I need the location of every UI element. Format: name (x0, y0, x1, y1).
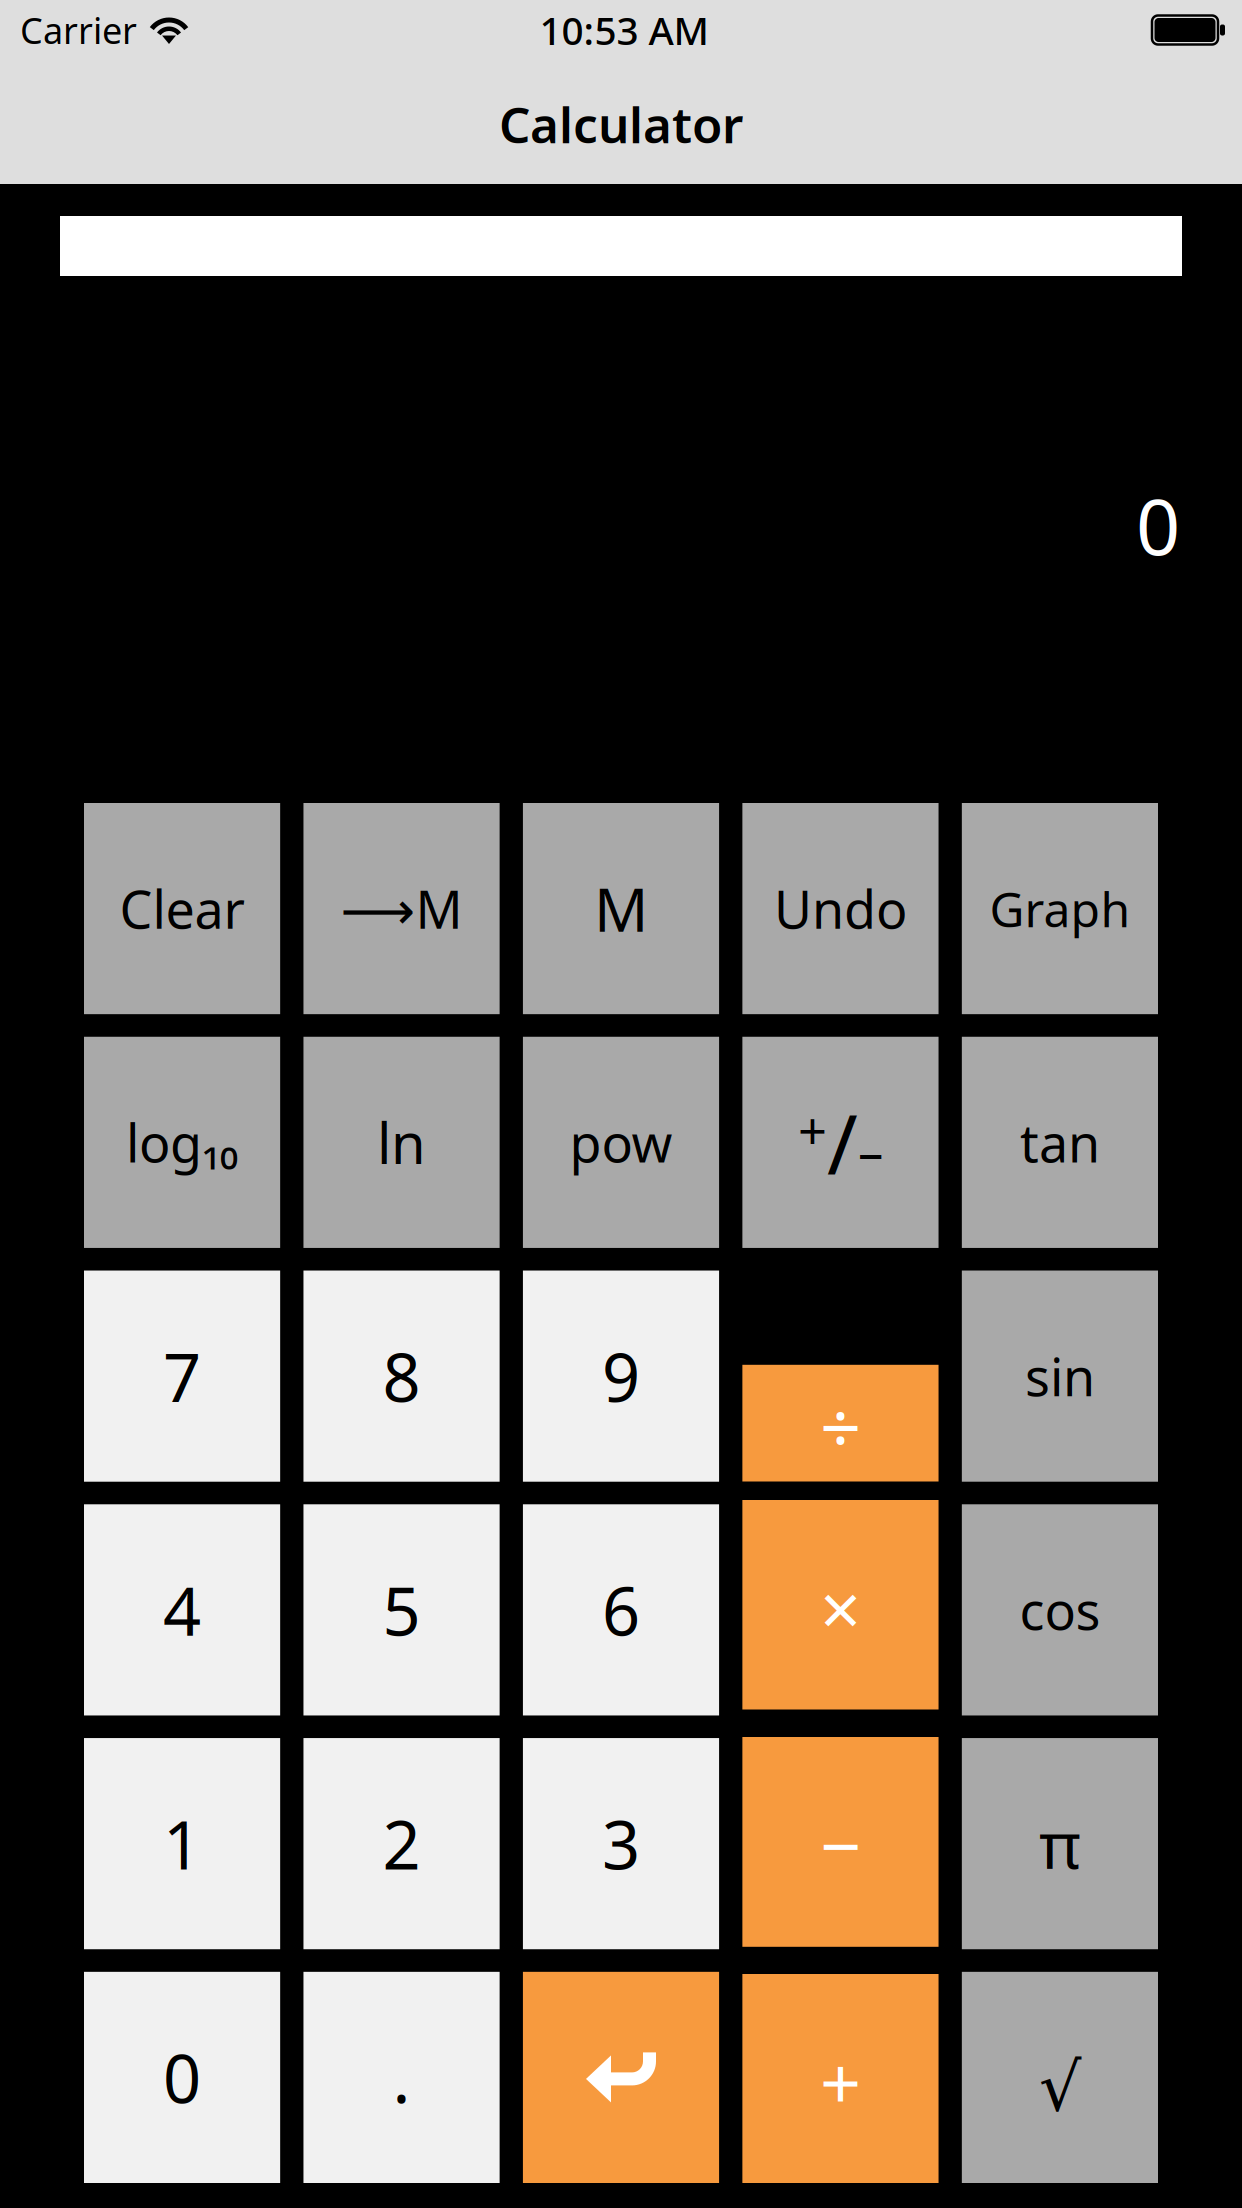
button[interactable]: sin (962, 1270, 1158, 1482)
staticText: 9 (602, 1332, 640, 1420)
staticText: / (827, 1087, 858, 1197)
staticText: tan (1020, 1108, 1100, 1177)
button[interactable]: Multiply (742, 1500, 939, 1709)
button[interactable]: Return (523, 1972, 719, 2183)
staticText: + (798, 1097, 827, 1164)
staticText: Carrier (20, 6, 137, 54)
staticText: Undo (774, 874, 907, 943)
button[interactable]: 1 (84, 1738, 280, 1949)
staticText: 1 (163, 1799, 201, 1888)
staticText: × (820, 1560, 861, 1655)
staticText: ln (377, 1105, 426, 1180)
button[interactable]: . (303, 1972, 500, 2183)
button[interactable]: tan (962, 1037, 1158, 1248)
button[interactable]: 6 (523, 1504, 719, 1715)
staticText: 10:53 AM (539, 4, 708, 56)
button[interactable]: cos (962, 1504, 1158, 1715)
staticText: 5 (382, 1566, 420, 1654)
button[interactable]: 2 (303, 1738, 500, 1949)
staticText: ⟶M (340, 874, 462, 943)
button[interactable]: Square root (962, 1972, 1158, 2183)
staticText: 0 (163, 2033, 201, 2122)
staticText: . (392, 2033, 410, 2122)
button[interactable]: Subtract (742, 1737, 939, 1947)
button[interactable]: 5 (303, 1504, 500, 1715)
staticText: Calculator (499, 91, 743, 157)
staticText: − (820, 1797, 861, 1893)
button[interactable]: 7 (84, 1270, 280, 1482)
button[interactable]: Plus or minus (742, 1037, 939, 1248)
staticText: pow (569, 1108, 672, 1177)
button[interactable]: pow (523, 1037, 719, 1248)
staticText: + (820, 2034, 861, 2129)
button[interactable]: M (523, 803, 719, 1014)
staticText: ÷ (820, 1378, 861, 1474)
staticText: 6 (602, 1566, 640, 1654)
staticText: 0 (1136, 474, 1180, 576)
button[interactable]: Graph (962, 803, 1158, 1014)
button[interactable]: 9 (523, 1270, 719, 1482)
button[interactable]: 0 (84, 1972, 280, 2183)
staticText: – (858, 1118, 883, 1185)
button[interactable]: 4 (84, 1504, 280, 1715)
staticText: 8 (382, 1332, 420, 1420)
button[interactable]: Store to memory (303, 803, 500, 1014)
staticText: 7 (163, 1332, 201, 1420)
button[interactable]: Clear (84, 803, 280, 1014)
staticText: 2 (382, 1799, 420, 1888)
button[interactable]: Pi (962, 1738, 1158, 1949)
button[interactable]: ln (303, 1037, 500, 1248)
staticText: π (1039, 1801, 1081, 1886)
staticText: cos (1019, 1575, 1100, 1644)
staticText: sin (1025, 1342, 1095, 1411)
staticText: 3 (602, 1799, 640, 1888)
staticText: Clear (120, 874, 245, 943)
staticText: 4 (163, 1566, 201, 1654)
staticText: √ (1039, 2050, 1081, 2125)
button[interactable]: Divide (742, 1365, 939, 1481)
button[interactable]: 8 (303, 1270, 500, 1482)
button[interactable]: 3 (523, 1738, 719, 1949)
button[interactable]: log₁₀ (84, 1037, 280, 1248)
staticText: M (594, 869, 648, 948)
staticText: Graph (989, 877, 1130, 940)
staticText: log₁₀ (126, 1108, 238, 1177)
button[interactable]: Undo (742, 803, 939, 1014)
button[interactable]: Add (742, 1974, 939, 2183)
